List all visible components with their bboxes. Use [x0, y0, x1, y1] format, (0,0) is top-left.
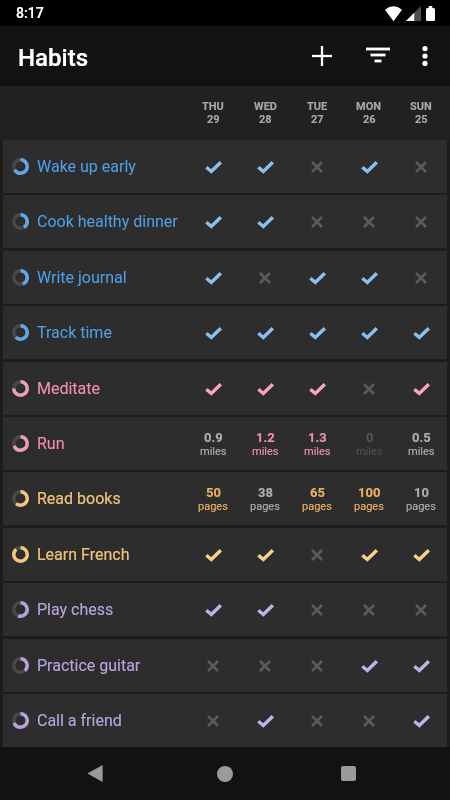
button[interactable]: Call a friend	[3, 694, 447, 747]
button[interactable]	[291, 694, 343, 747]
button[interactable]	[201, 747, 249, 800]
staticText: Practice guitar	[37, 656, 141, 675]
button[interactable]: 0.9	[187, 417, 239, 470]
button[interactable]	[395, 251, 447, 304]
button[interactable]	[291, 362, 343, 415]
button[interactable]: 65	[291, 472, 343, 525]
staticText: Read books	[37, 489, 121, 508]
button[interactable]: Meditate	[3, 362, 447, 415]
button[interactable]: 100	[343, 472, 395, 525]
button[interactable]	[343, 362, 395, 415]
button[interactable]: 50	[187, 472, 239, 525]
button[interactable]	[239, 694, 291, 747]
button[interactable]	[239, 639, 291, 692]
button[interactable]: Write journal	[3, 251, 447, 304]
staticText: Habits	[18, 44, 89, 72]
button[interactable]: Track time	[3, 306, 447, 359]
staticText: SUN	[410, 100, 432, 113]
staticText: 0	[366, 430, 374, 445]
button[interactable]: Wake up early	[3, 140, 447, 193]
button[interactable]	[343, 639, 395, 692]
button[interactable]: 1.2	[239, 417, 291, 470]
button[interactable]	[343, 583, 395, 636]
button[interactable]	[291, 306, 343, 359]
staticText: 1.2	[256, 430, 275, 445]
staticText: Run	[37, 434, 65, 453]
button[interactable]	[395, 362, 447, 415]
button[interactable]	[343, 251, 395, 304]
button[interactable]	[239, 195, 291, 248]
button[interactable]	[354, 32, 402, 80]
button[interactable]	[343, 195, 395, 248]
staticText: 26	[363, 113, 376, 126]
button[interactable]	[187, 694, 239, 747]
button[interactable]	[187, 583, 239, 636]
staticText: 0.9	[204, 430, 223, 445]
staticText: pages	[354, 500, 384, 513]
button[interactable]	[395, 583, 447, 636]
button[interactable]: 38	[239, 472, 291, 525]
staticText: 25	[415, 113, 428, 126]
button[interactable]	[71, 747, 119, 800]
button[interactable]	[298, 32, 346, 80]
button[interactable]: Play chess	[3, 583, 447, 636]
button[interactable]: 0.5	[395, 417, 447, 470]
button[interactable]: 1.3	[291, 417, 343, 470]
button[interactable]	[395, 694, 447, 747]
button[interactable]	[343, 528, 395, 581]
button[interactable]	[187, 251, 239, 304]
button[interactable]	[239, 362, 291, 415]
button[interactable]	[291, 195, 343, 248]
button[interactable]	[395, 140, 447, 193]
button[interactable]	[343, 306, 395, 359]
button[interactable]	[291, 251, 343, 304]
button[interactable]	[187, 195, 239, 248]
button[interactable]	[239, 528, 291, 581]
button[interactable]	[239, 583, 291, 636]
staticText: miles	[200, 445, 227, 458]
button[interactable]	[187, 362, 239, 415]
button[interactable]	[395, 528, 447, 581]
staticText: 100	[358, 485, 381, 500]
staticText: miles	[356, 445, 383, 458]
button[interactable]: Cook healthy dinner	[3, 195, 447, 248]
button[interactable]	[291, 528, 343, 581]
button[interactable]: Learn French	[3, 528, 447, 581]
button[interactable]: 10	[395, 472, 447, 525]
staticText: THU	[202, 100, 224, 113]
button[interactable]: Practice guitar	[3, 639, 447, 692]
button[interactable]	[239, 140, 291, 193]
staticText: Call a friend	[37, 711, 122, 730]
button[interactable]	[402, 33, 448, 79]
button[interactable]	[239, 251, 291, 304]
staticText: miles	[252, 445, 279, 458]
button[interactable]	[324, 747, 372, 800]
staticText: 0.5	[412, 430, 431, 445]
button[interactable]	[187, 306, 239, 359]
button[interactable]	[187, 639, 239, 692]
staticText: MON	[356, 100, 382, 113]
staticText: Play chess	[37, 600, 114, 619]
button[interactable]	[395, 306, 447, 359]
staticText: pages	[406, 500, 436, 513]
button[interactable]	[239, 306, 291, 359]
button[interactable]	[291, 639, 343, 692]
button[interactable]	[343, 140, 395, 193]
button[interactable]	[187, 528, 239, 581]
staticText: Cook healthy dinner	[37, 212, 178, 231]
button[interactable]	[291, 140, 343, 193]
button[interactable]: 0	[343, 417, 395, 470]
staticText: pages	[302, 500, 332, 513]
staticText: TUE	[307, 100, 328, 113]
button[interactable]	[343, 694, 395, 747]
staticText: 1.3	[308, 430, 327, 445]
button[interactable]	[291, 583, 343, 636]
button[interactable]	[395, 639, 447, 692]
staticText: 65	[310, 485, 325, 500]
button[interactable]	[187, 140, 239, 193]
button[interactable]: Read books	[3, 472, 447, 525]
button[interactable]	[395, 195, 447, 248]
staticText: 38	[258, 485, 273, 500]
button[interactable]: Run	[3, 417, 447, 470]
staticText: 29	[207, 113, 220, 126]
